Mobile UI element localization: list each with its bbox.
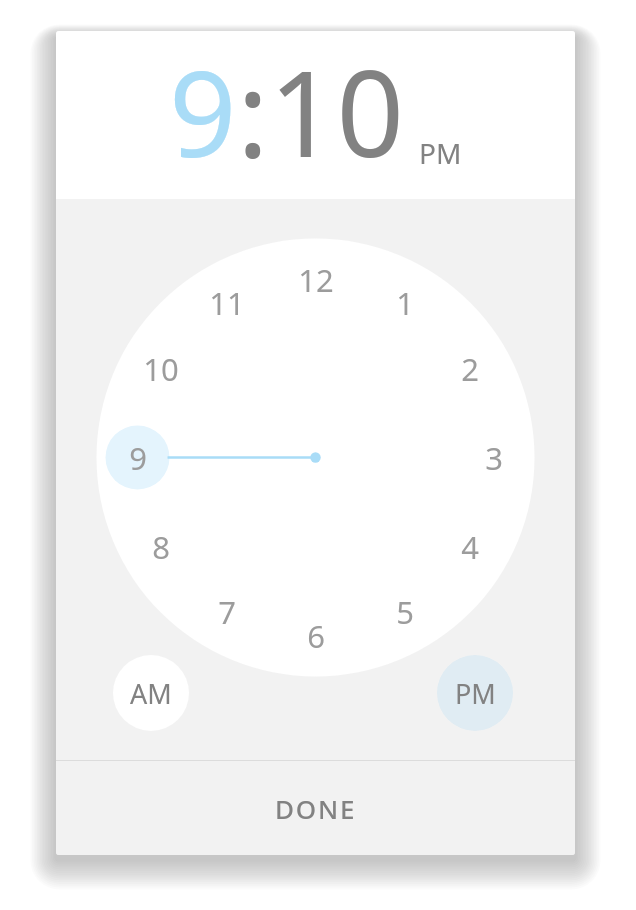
staticText: DONE	[275, 791, 357, 826]
staticText: PM	[455, 675, 496, 712]
button[interactable]: PM	[437, 655, 513, 731]
button[interactable]: 1	[373, 271, 437, 335]
button[interactable]: 9	[169, 31, 237, 192]
staticText: 12	[298, 259, 334, 301]
button[interactable]: 12	[284, 248, 348, 312]
staticText: 5	[396, 591, 414, 633]
button[interactable]: 3	[462, 426, 526, 490]
staticText: 7	[218, 591, 236, 633]
staticText: 1	[396, 282, 414, 324]
button[interactable]: 10	[269, 31, 404, 192]
button[interactable]: 6	[284, 604, 348, 668]
staticText: 3	[485, 437, 503, 479]
button[interactable]: 9	[106, 426, 170, 490]
staticText: 6	[307, 615, 325, 657]
button[interactable]: PM	[419, 134, 462, 172]
staticText: 11	[209, 282, 245, 324]
staticText: AM	[130, 675, 172, 712]
staticText: 8	[152, 526, 170, 568]
button[interactable]: 7	[195, 580, 259, 644]
button[interactable]: 2	[438, 337, 502, 401]
staticText: 4	[461, 526, 479, 568]
button[interactable]: AM	[113, 655, 189, 731]
button[interactable]: DONE	[56, 761, 575, 855]
button[interactable]: 10	[129, 337, 193, 401]
staticText: :	[237, 31, 269, 192]
button[interactable]: 5	[373, 580, 437, 644]
button[interactable]: 4	[438, 515, 502, 579]
staticText: 9	[129, 437, 147, 479]
staticText: 2	[461, 348, 479, 390]
button[interactable]: 8	[129, 515, 193, 579]
staticText: 10	[143, 348, 179, 390]
button[interactable]: 11	[195, 271, 259, 335]
